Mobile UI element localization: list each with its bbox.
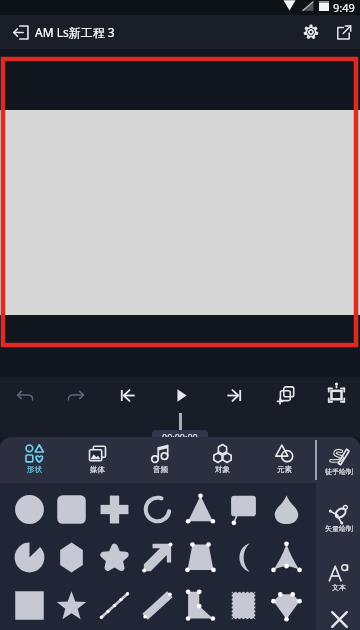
button[interactable]: Back: [4, 15, 38, 49]
button[interactable]: Shape 3: [138, 490, 176, 528]
staticText: 媒体: [90, 465, 105, 474]
button[interactable]: Shape 20: [267, 586, 305, 624]
button[interactable]: 矢量绘制: [318, 503, 360, 533]
staticText: 9:49: [333, 0, 355, 15]
button[interactable]: Shape 17: [138, 586, 176, 624]
button[interactable]: Play: [164, 378, 198, 412]
button[interactable]: 文本: [318, 562, 360, 592]
staticText: 元素: [277, 465, 292, 474]
staticText: 对象: [215, 465, 230, 474]
staticText: 徒手绘制: [325, 467, 353, 476]
button[interactable]: Shape 14: [10, 586, 48, 624]
button[interactable]: Shape 11: [181, 538, 219, 576]
button[interactable]: Shape 16: [95, 586, 133, 624]
button[interactable]: 形状: [5, 437, 63, 483]
staticText: 00:00:00: [162, 431, 198, 443]
staticText: 音频: [153, 465, 168, 474]
button[interactable]: Shape 5: [224, 490, 262, 528]
button[interactable]: Shape 9: [95, 538, 133, 576]
button[interactable]: Export: [326, 15, 360, 49]
button[interactable]: Shape 4: [181, 490, 219, 528]
button[interactable]: 徒手绘制: [318, 446, 360, 476]
button[interactable]: Duplicate: [269, 377, 303, 411]
button[interactable]: Shape 19: [224, 586, 262, 624]
button[interactable]: 媒体: [68, 437, 126, 483]
staticText: 文本: [332, 583, 346, 592]
button[interactable]: Shape 18: [181, 586, 219, 624]
button[interactable]: Shape 7: [10, 538, 48, 576]
button[interactable]: 对象: [193, 437, 251, 483]
button[interactable]: Close: [318, 608, 360, 630]
button[interactable]: Redo: [59, 378, 93, 412]
button[interactable]: 音频: [131, 437, 189, 483]
button[interactable]: Frame: [319, 375, 353, 409]
button[interactable]: Shape 6: [267, 490, 305, 528]
button[interactable]: Shape 2: [95, 490, 133, 528]
button[interactable]: Shape 1: [52, 490, 90, 528]
button[interactable]: Shape 8: [52, 538, 90, 576]
button[interactable]: Shape 10: [138, 538, 176, 576]
button[interactable]: Skip to start: [110, 378, 144, 412]
button[interactable]: Shape 0: [10, 490, 48, 528]
button[interactable]: Undo: [8, 378, 42, 412]
button[interactable]: Shape 12: [224, 538, 262, 576]
staticText: 形状: [27, 465, 42, 474]
button[interactable]: Settings: [294, 15, 328, 49]
staticText: 矢量绘制: [325, 524, 353, 533]
button[interactable]: Shape 15: [52, 586, 90, 624]
button[interactable]: 元素: [255, 437, 313, 483]
button[interactable]: Skip to end: [217, 378, 251, 412]
button[interactable]: Shape 13: [267, 538, 305, 576]
staticText: AM Ls新工程 3: [35, 24, 115, 40]
